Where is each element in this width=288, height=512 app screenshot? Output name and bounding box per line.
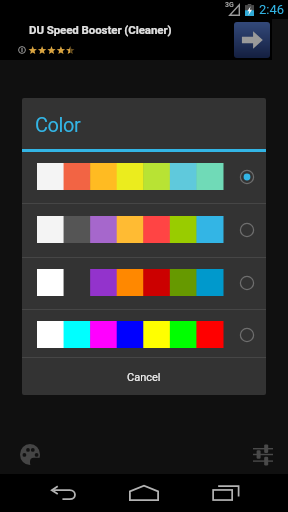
staticText: Color <box>35 113 81 136</box>
button[interactable]: Settings <box>253 444 273 465</box>
button[interactable]: Install <box>234 22 270 58</box>
button[interactable] <box>22 308 266 361</box>
staticText: 3G <box>225 1 234 9</box>
button[interactable] <box>22 256 266 309</box>
staticText: Cancel <box>127 371 161 384</box>
button[interactable]: Cancel <box>22 358 266 395</box>
staticText: DU Speed Booster (Cleaner) <box>29 23 172 36</box>
button[interactable] <box>22 150 266 203</box>
button[interactable]: Back <box>44 478 84 508</box>
button[interactable]: Palette <box>20 444 40 465</box>
button[interactable]: Home <box>124 478 164 508</box>
staticText: 2:46 <box>259 2 285 17</box>
button[interactable] <box>22 203 266 256</box>
button[interactable]: Recent apps <box>206 478 246 508</box>
